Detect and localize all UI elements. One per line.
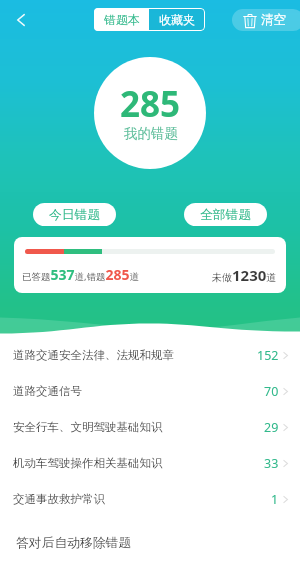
staticText: 70: [264, 383, 279, 400]
button[interactable]: 收藏夹: [149, 8, 205, 31]
staticText: 已答题537道,错题285道: [22, 265, 140, 284]
staticText: 清空: [261, 12, 286, 28]
button[interactable]: 机动车驾驶操作相关基础知识: [0, 445, 300, 481]
button[interactable]: 今日错题: [33, 203, 116, 226]
staticText: 29: [264, 419, 279, 436]
staticText: 未做1230道: [212, 265, 277, 285]
staticText: 收藏夹: [159, 12, 195, 27]
button[interactable]: 全部错题: [184, 203, 267, 226]
staticText: 安全行车、文明驾驶基础知识: [13, 420, 163, 434]
staticText: 1: [271, 491, 279, 508]
button[interactable]: Back: [6, 5, 36, 35]
staticText: 285: [120, 80, 181, 128]
button[interactable]: 清空: [232, 9, 300, 31]
staticText: 我的错题: [124, 125, 178, 142]
button[interactable]: 交通事故救护常识: [0, 481, 300, 517]
button[interactable]: 道路交通安全法律、法规和规章: [0, 337, 300, 373]
staticText: 机动车驾驶操作相关基础知识: [13, 456, 163, 470]
staticText: 错题本: [104, 12, 140, 27]
staticText: 全部错题: [200, 207, 252, 223]
staticText: 道路交通信号: [13, 384, 82, 398]
staticText: 道路交通安全法律、法规和规章: [13, 348, 174, 362]
staticText: 152: [257, 347, 279, 364]
staticText: 交通事故救护常识: [13, 492, 105, 506]
button[interactable]: 道路交通信号: [0, 373, 300, 409]
button[interactable]: 错题本: [94, 8, 149, 31]
staticText: 答对后自动移除错题: [16, 535, 132, 551]
staticText: 33: [264, 455, 279, 472]
button[interactable]: 安全行车、文明驾驶基础知识: [0, 409, 300, 445]
staticText: 今日错题: [49, 207, 101, 223]
